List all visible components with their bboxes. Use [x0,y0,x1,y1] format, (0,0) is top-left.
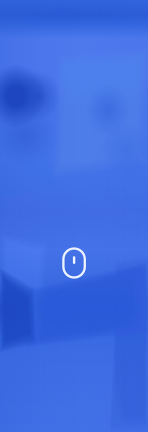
button[interactable]: Mouse pointer [56,242,92,284]
